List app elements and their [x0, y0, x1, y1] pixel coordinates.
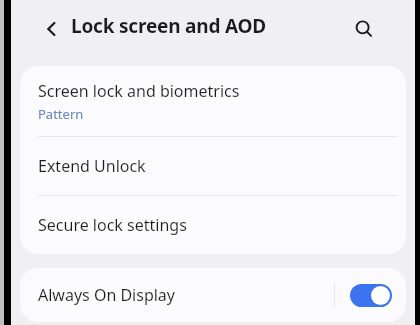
staticText: Lock screen and AOD — [71, 13, 267, 39]
button[interactable]: Back — [35, 12, 69, 46]
button[interactable]: Search — [347, 12, 381, 46]
button[interactable]: Always On Display toggle — [350, 284, 392, 307]
button[interactable]: Extend Unlock — [20, 137, 406, 195]
button[interactable]: Always On Display — [20, 268, 406, 322]
button[interactable]: Screen lock and biometrics — [20, 66, 406, 136]
staticText: Pattern — [38, 105, 84, 123]
staticText: Extend Unlock — [38, 155, 146, 177]
staticText: Secure lock settings — [38, 214, 187, 236]
button[interactable]: Secure lock settings — [20, 196, 406, 254]
staticText: Always On Display — [38, 284, 176, 306]
staticText: Screen lock and biometrics — [38, 80, 240, 102]
